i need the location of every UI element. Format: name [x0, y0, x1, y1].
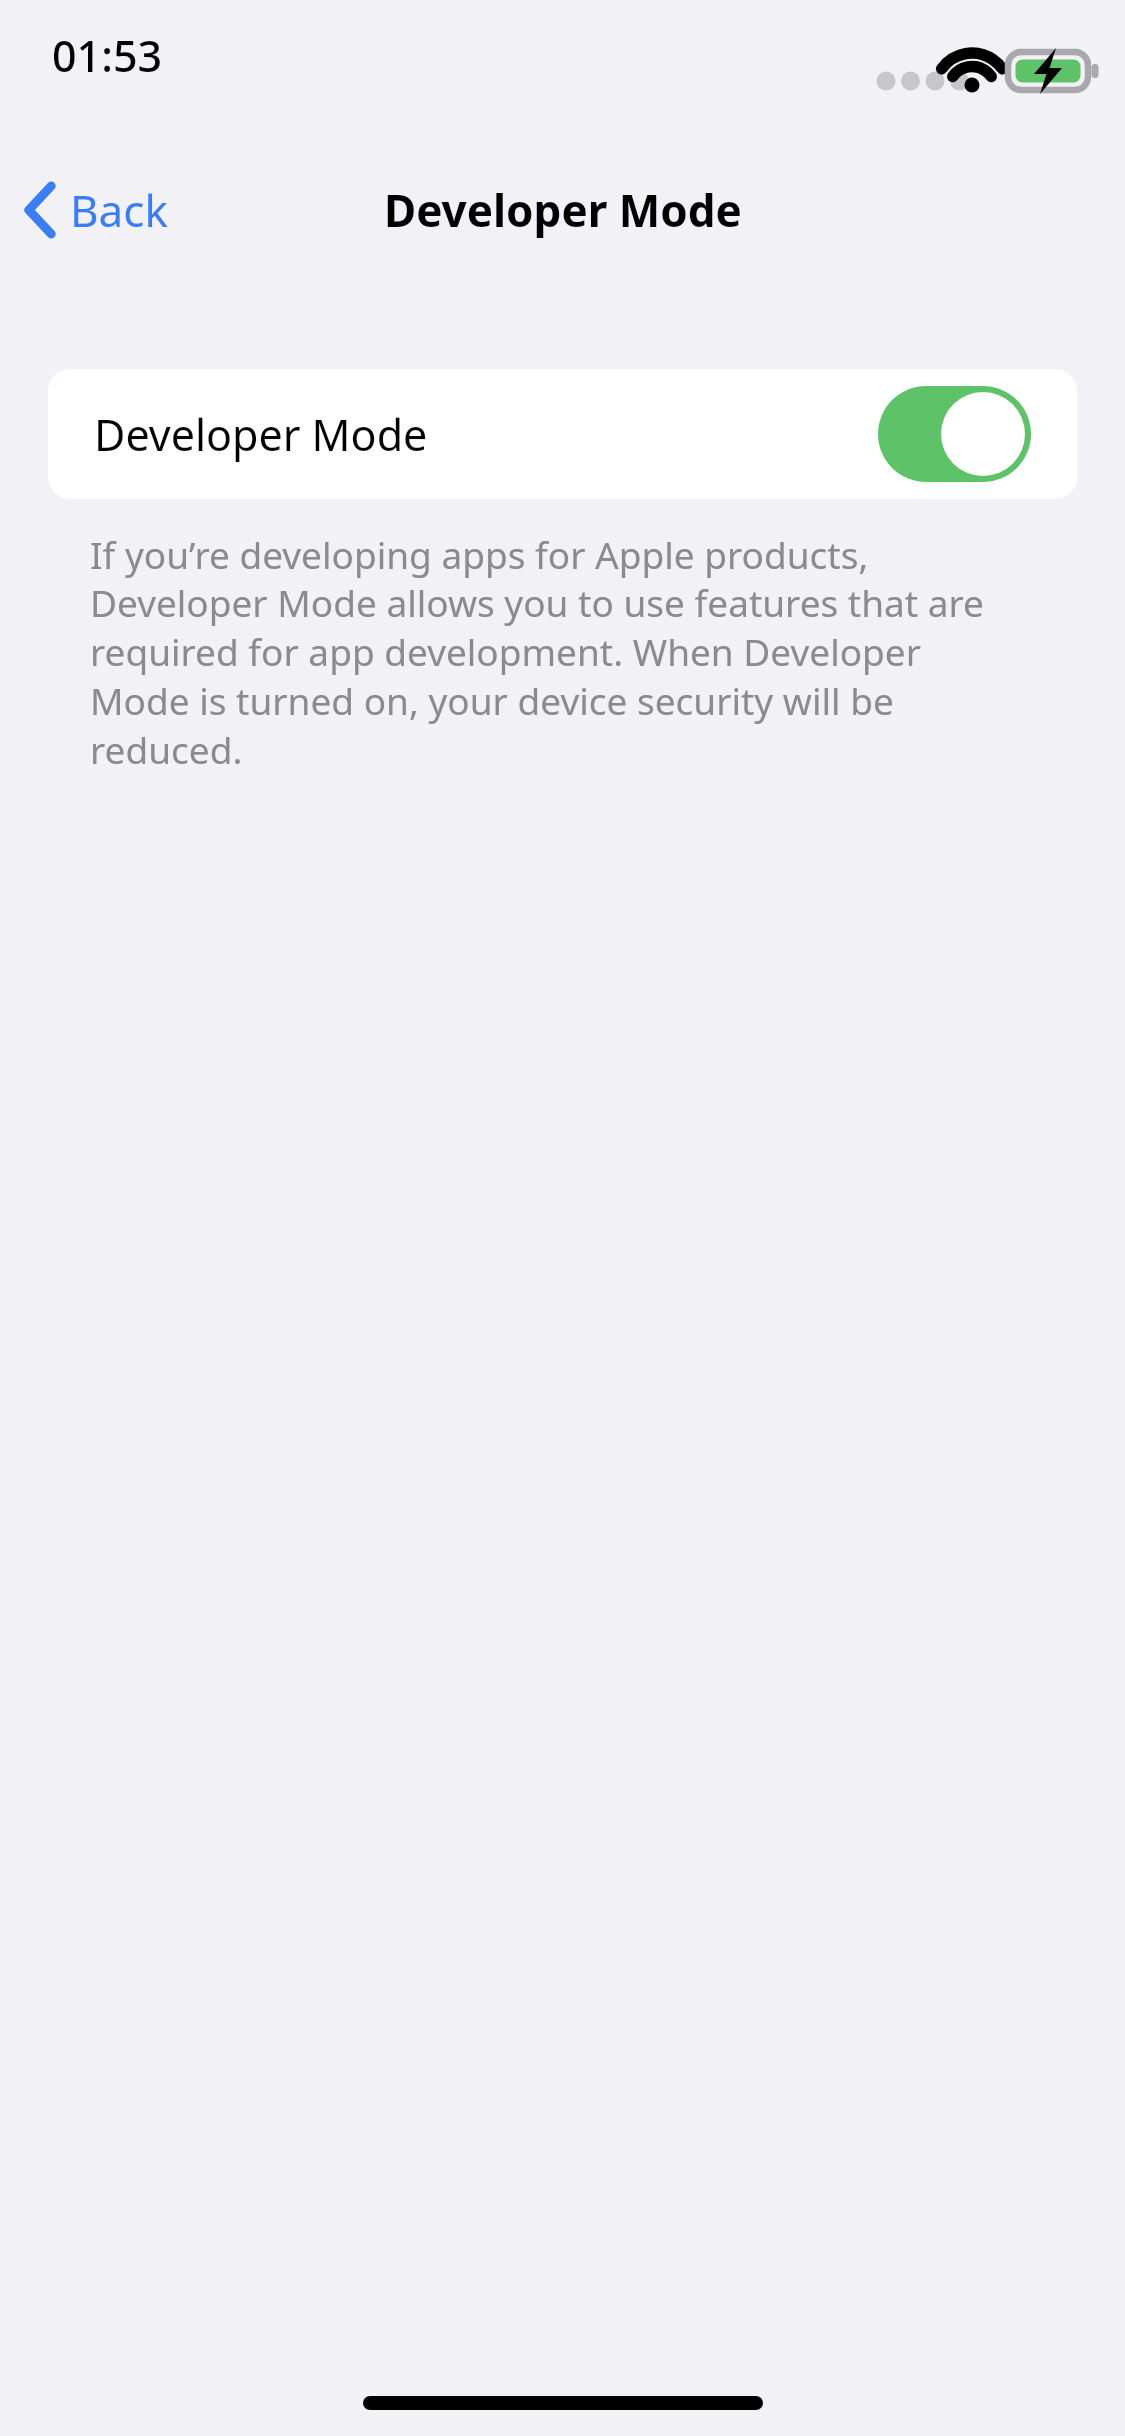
staticText: Developer Mode [384, 180, 742, 240]
staticText: 01:53 [52, 26, 163, 85]
button[interactable]: Developer Mode [48, 369, 1077, 499]
staticText: Back [70, 180, 168, 240]
button[interactable]: Developer Mode toggle, on [878, 386, 1031, 482]
staticText: If you’re developing apps for Apple prod… [90, 529, 1030, 775]
staticText: Developer Mode [94, 405, 428, 464]
button[interactable]: Back [0, 172, 174, 248]
